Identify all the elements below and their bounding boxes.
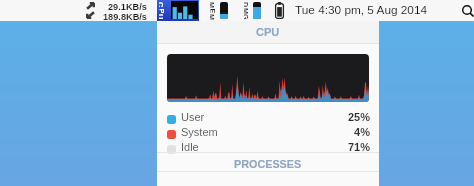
staticText: PROCESSES — [234, 158, 302, 170]
button[interactable]: CPU monitor menu — [157, 0, 199, 21]
staticText: D — [244, 2, 250, 8]
staticText: M — [244, 8, 250, 14]
staticText: 29.1KB/s — [108, 2, 147, 12]
staticText: 189.8KB/s — [103, 12, 147, 22]
staticText: 4% — [297, 126, 370, 138]
staticText: 25% — [297, 111, 370, 123]
staticText: M — [210, 2, 216, 8]
button[interactable]: User — [157, 111, 379, 125]
staticText: G — [244, 14, 250, 20]
staticText: E — [210, 8, 216, 13]
staticText: 71% — [297, 141, 370, 153]
button[interactable]: System — [157, 126, 379, 140]
staticText: P — [159, 8, 165, 13]
staticText: C — [159, 2, 165, 8]
button[interactable]: Idle — [157, 141, 379, 155]
staticText: System — [181, 126, 218, 138]
staticText: U — [159, 14, 165, 20]
staticText: CPU — [256, 26, 280, 38]
button[interactable]: PROCESSES — [157, 155, 379, 172]
other: Network activity — [86, 2, 95, 19]
staticText: Tue 4:30 pm, 5 Aug 2014 — [295, 3, 428, 16]
staticText: M — [210, 14, 216, 20]
staticText: Idle — [181, 141, 199, 153]
button[interactable]: Tue 4:30 pm, 5 Aug 2014 — [295, 3, 428, 16]
button[interactable]: Search — [461, 3, 474, 18]
staticText: User — [181, 111, 205, 123]
